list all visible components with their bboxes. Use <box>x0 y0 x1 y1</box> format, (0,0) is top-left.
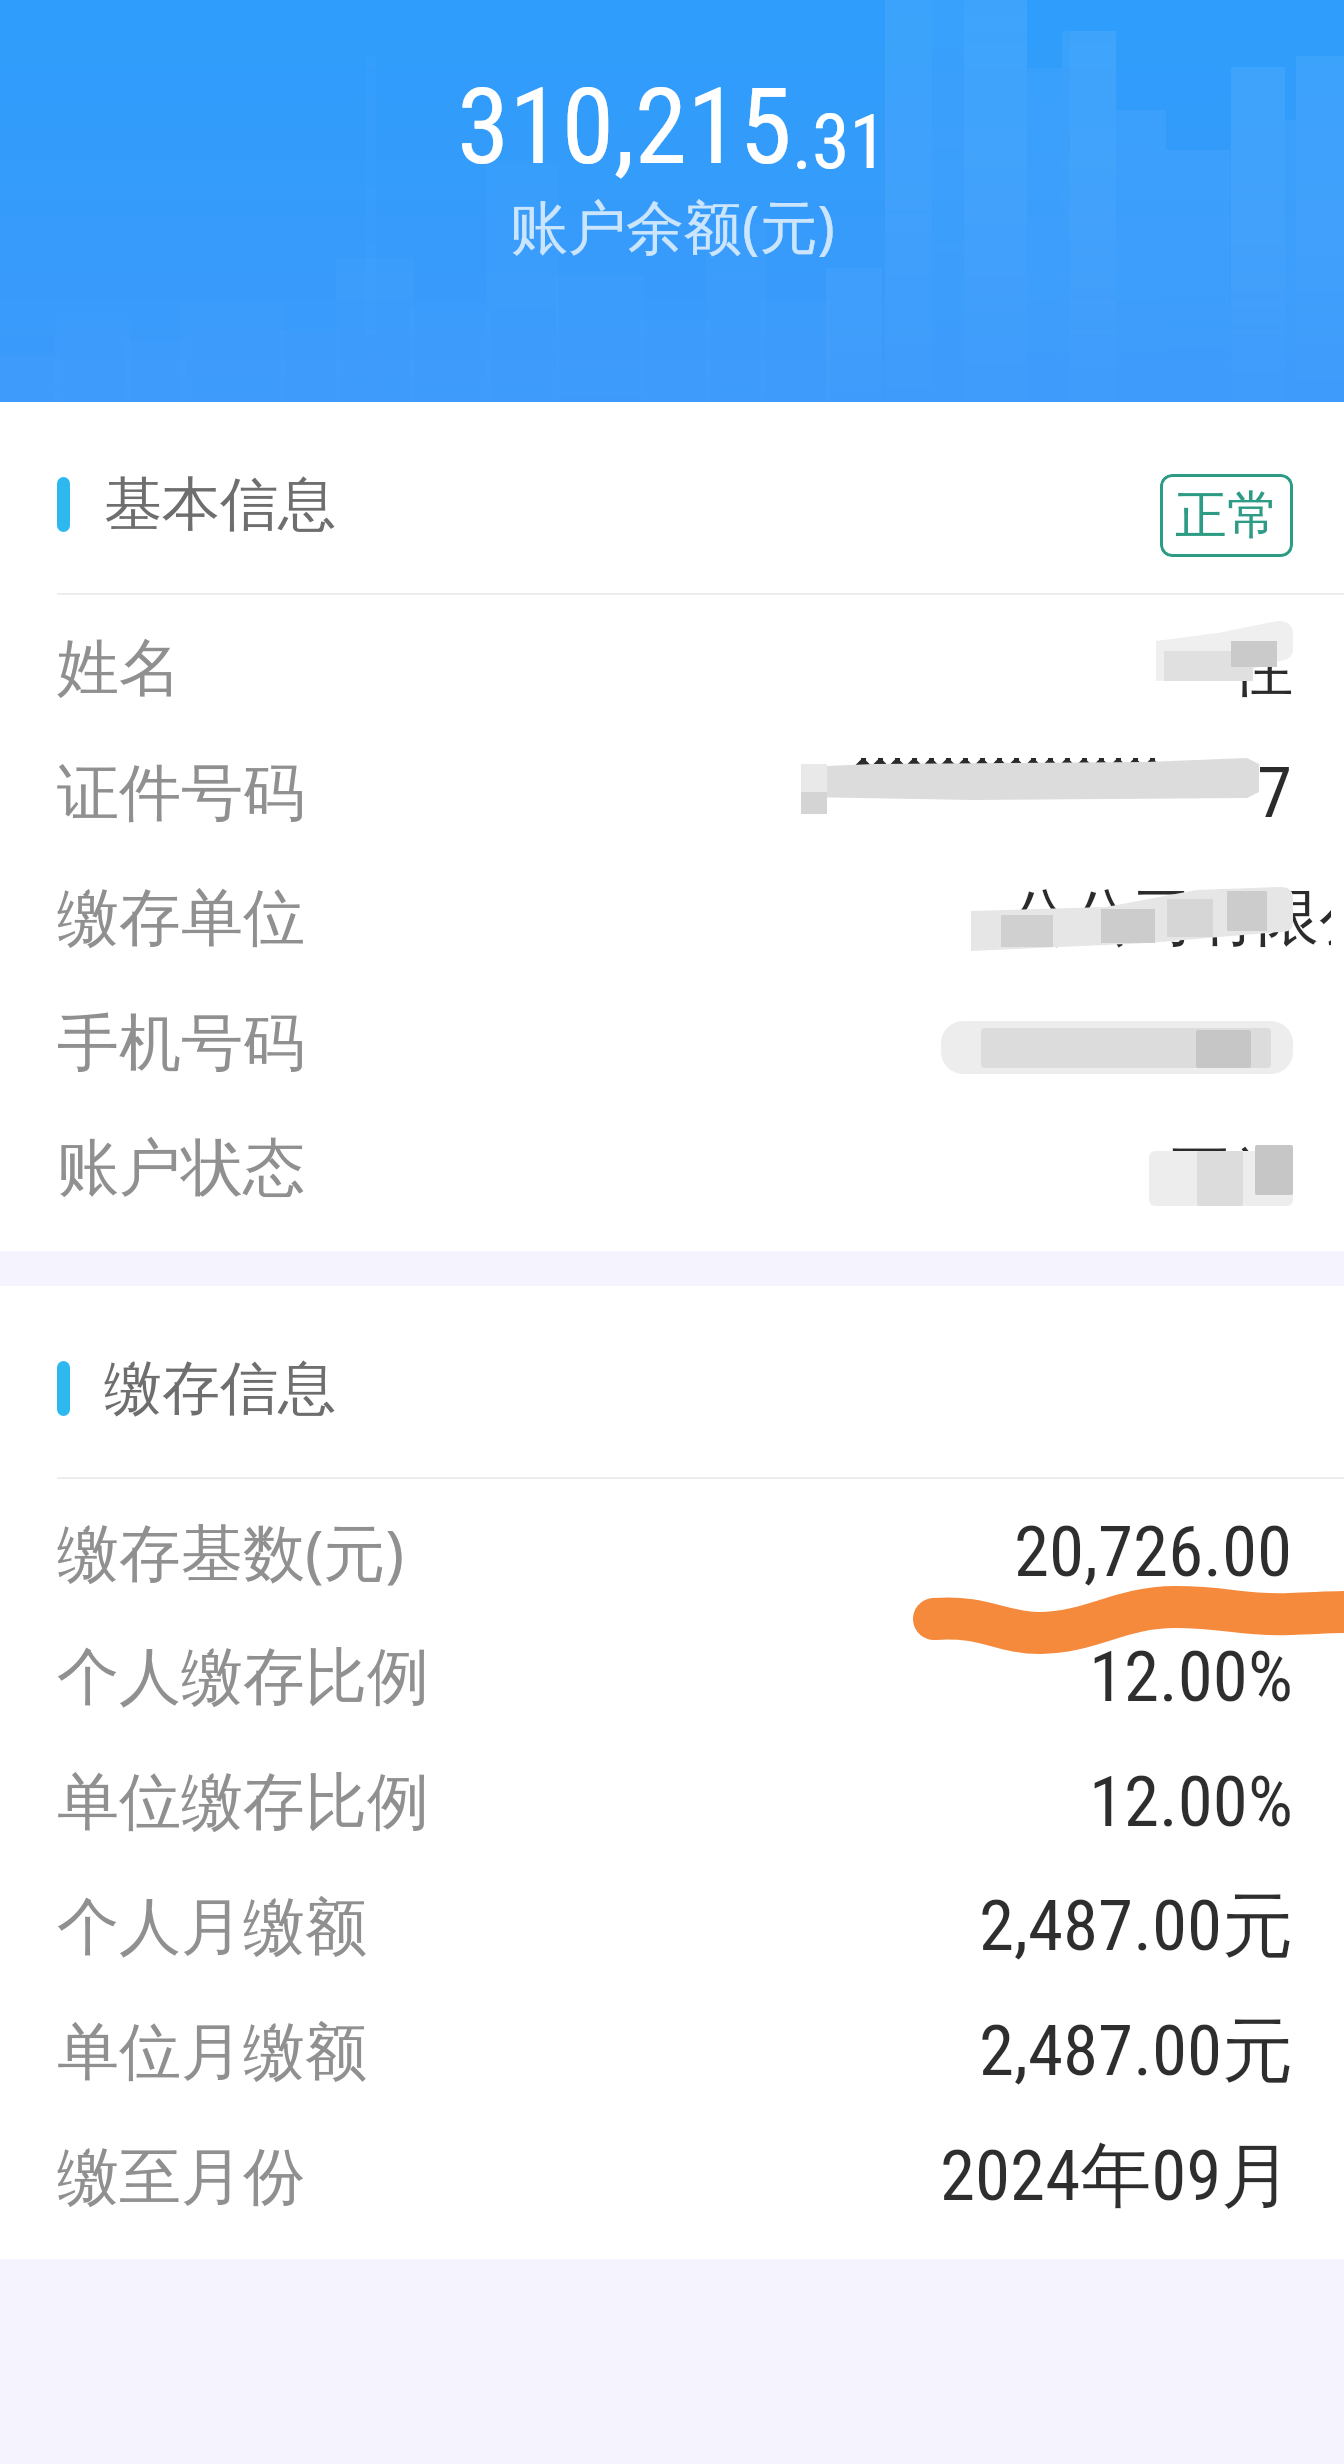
button[interactable]: 个人月缴额 <box>0 1854 1344 1979</box>
staticText: 证件号码 <box>57 754 305 832</box>
staticText: 2024年09月 <box>940 2132 1293 2221</box>
staticText: 基本信息 <box>104 468 336 541</box>
staticText: 个人缴存比例 <box>57 1638 429 1716</box>
staticText: 正常 <box>1169 1136 1293 1214</box>
button[interactable]: 缴存基数(元) <box>0 1479 1344 1604</box>
button[interactable]: 缴至月份 <box>0 2104 1344 2229</box>
staticText: 账户状态 <box>57 1129 305 1207</box>
button[interactable]: 账户状态 <box>0 1095 1344 1220</box>
staticText: 账户余额(元) <box>510 186 835 265</box>
staticText: 姓名 <box>57 629 181 707</box>
button[interactable]: 证件号码 <box>0 720 1344 845</box>
staticText: 缴至月份 <box>57 2138 305 2216</box>
staticText: 手机号码 <box>57 1004 305 1082</box>
staticText: 20,726.00 <box>1014 1510 1293 1593</box>
button[interactable]: 姓名 <box>0 595 1344 720</box>
staticText: 单位月缴额 <box>57 2013 367 2091</box>
staticText: 公公司有限公司人 <box>1009 879 1331 957</box>
staticText: 2,487.00元 <box>979 1882 1293 1971</box>
button[interactable]: 缴存单位 <box>0 845 1344 970</box>
button[interactable]: 个人缴存比例 <box>0 1604 1344 1729</box>
staticText: .31 <box>792 97 888 186</box>
staticText: 12.00% <box>1089 1635 1293 1718</box>
staticText: 缴存信息 <box>104 1352 336 1425</box>
staticText: 12.00% <box>1089 1760 1293 1843</box>
button[interactable]: 单位月缴额 <box>0 1979 1344 2104</box>
staticText: 缴存基数(元) <box>57 1509 405 1594</box>
staticText: 住 <box>1231 629 1293 707</box>
staticText: 缴存单位 <box>57 879 305 957</box>
button[interactable]: 单位缴存比例 <box>0 1729 1344 1854</box>
staticText: 2,487.00元 <box>979 2007 1293 2096</box>
staticText: 单位缴存比例 <box>57 1763 429 1841</box>
button[interactable]: 手机号码 <box>0 970 1344 1095</box>
staticText: 7 <box>1257 751 1293 834</box>
button[interactable]: 正常 <box>1160 474 1293 557</box>
staticText: 310,215 <box>457 65 792 189</box>
staticText: 个人月缴额 <box>57 1888 367 1966</box>
staticText: 正常 <box>1175 483 1279 549</box>
